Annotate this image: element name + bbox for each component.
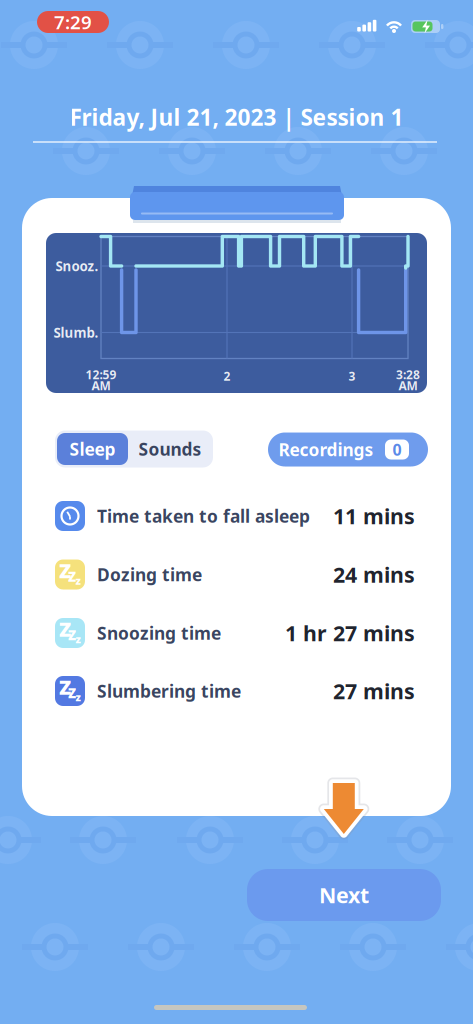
staticText: Z [68,568,76,585]
staticText: 3 [348,368,355,384]
staticText: 2 [223,368,230,384]
staticText: 11 mins [333,502,415,530]
staticText: 0 [392,439,401,460]
staticText: Snooz. [55,257,98,275]
staticText: 7:29 [54,10,92,34]
staticText: Sounds [138,437,201,460]
staticText: Snoozing time [97,621,221,644]
staticText: 12:59 [85,366,116,382]
staticText: Z [59,557,71,584]
staticText: Z [68,626,76,644]
staticText: z [75,690,80,704]
staticText: Z [59,674,71,700]
staticText: Sleep [69,437,115,460]
staticText: Dozing time [97,563,202,586]
staticText: AM [91,377,110,393]
staticText: 1 hr 27 mins [285,619,415,647]
staticText: Z [68,684,76,702]
staticText: AM [398,377,417,393]
staticText: Next [319,881,369,909]
staticText: Recordings [278,438,373,461]
staticText: z [75,573,80,588]
staticText: Z [59,616,71,642]
staticText: Time taken to fall asleep [97,504,310,527]
staticText: 27 mins [333,677,415,705]
staticText: Slumb. [53,324,98,341]
staticText: 24 mins [333,560,415,589]
staticText: 3:28 [396,366,420,382]
staticText: Slumbering time [97,679,241,702]
staticText: z [75,632,80,646]
staticText: Friday, Jul 21, 2023 | Session 1 [69,102,403,132]
